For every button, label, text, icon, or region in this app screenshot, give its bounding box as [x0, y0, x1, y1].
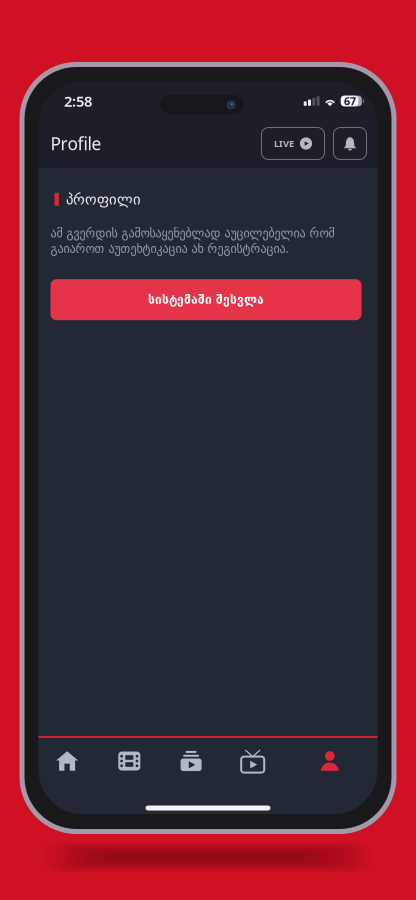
- staticText: ამ გვერდის გამოსაყენებლად აუცილებელია რო…: [50, 227, 334, 256]
- button[interactable]: Notifications: [333, 127, 366, 159]
- staticText: LIVE: [274, 137, 294, 150]
- button[interactable]: Shows: [163, 739, 219, 783]
- button[interactable]: სისტემაში შესვლა: [50, 279, 361, 320]
- staticText: პროფილი: [66, 191, 141, 208]
- staticText: სისტემაში შესვლა: [148, 293, 264, 306]
- button[interactable]: LIVE: [261, 127, 324, 159]
- button[interactable]: Home: [39, 739, 95, 783]
- staticText: 2:58: [64, 91, 92, 111]
- button[interactable]: Movies: [101, 739, 157, 783]
- button[interactable]: Live TV: [225, 739, 281, 783]
- button[interactable]: Profile: [302, 739, 358, 783]
- staticText: 67: [344, 94, 356, 108]
- staticText: Profile: [50, 132, 101, 155]
